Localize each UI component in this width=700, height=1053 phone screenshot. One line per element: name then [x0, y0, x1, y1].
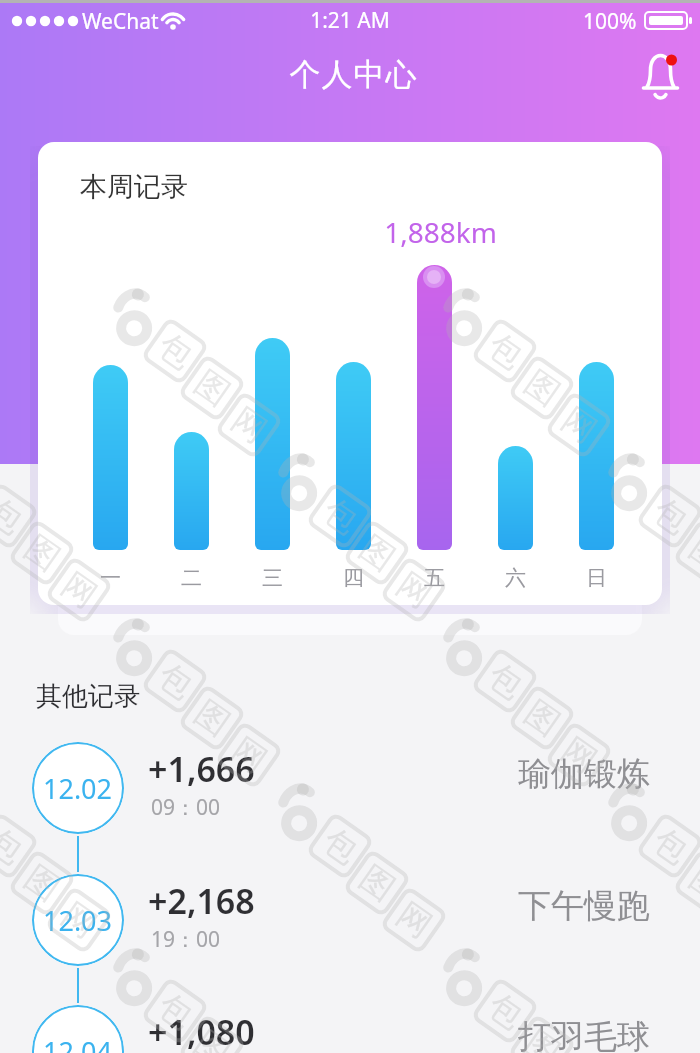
staticText: 包	[150, 985, 201, 1038]
staticText: 包	[315, 490, 366, 543]
staticText: 三	[262, 565, 283, 591]
staticText: 一	[100, 565, 121, 591]
staticText: 包	[0, 820, 31, 873]
staticText: 包	[645, 490, 696, 543]
staticText: 二	[181, 565, 202, 591]
staticText: 个人中心	[289, 55, 417, 94]
staticText: 图	[187, 1022, 238, 1053]
staticText: 网	[554, 729, 605, 782]
staticText: 包	[150, 325, 201, 378]
staticText: 网	[224, 399, 275, 452]
staticText: 网	[54, 564, 105, 617]
staticText: 12.03	[43, 902, 113, 939]
staticText: 网	[389, 894, 440, 947]
staticText: 其他记录	[36, 680, 140, 713]
staticText: 图	[517, 1022, 568, 1053]
staticText: 图	[517, 362, 568, 415]
staticText: +1,666	[148, 746, 255, 792]
button[interactable]: 瑜伽锻炼	[394, 746, 650, 802]
staticText: 网	[224, 729, 275, 782]
staticText: 五	[424, 565, 445, 591]
button[interactable]: 12.04	[32, 1005, 124, 1053]
staticText: 1:21 AM	[310, 6, 390, 35]
staticText: +2,168	[148, 878, 255, 924]
staticText: 图	[17, 527, 68, 580]
staticText: 网	[554, 399, 605, 452]
button[interactable]: 12.03	[32, 874, 124, 966]
staticText: 包	[645, 820, 696, 873]
staticText: 图	[682, 527, 700, 580]
staticText: +1,080	[148, 1009, 255, 1053]
staticText: 图	[187, 362, 238, 415]
button[interactable]	[636, 48, 688, 104]
staticText: 本周记录	[80, 170, 188, 204]
staticText: 包	[150, 655, 201, 708]
staticText: 12.04	[43, 1033, 113, 1053]
staticText: 瑜伽锻炼	[518, 753, 650, 795]
staticText: 图	[187, 692, 238, 745]
staticText: WeChat	[82, 7, 159, 36]
button[interactable]: 打羽毛球	[394, 1009, 650, 1053]
staticText: 图	[352, 527, 403, 580]
staticText: 包	[0, 490, 31, 543]
button[interactable]: 下午慢跑	[394, 878, 650, 934]
staticText: 四	[343, 565, 364, 591]
staticText: 六	[505, 565, 526, 591]
staticText: 19：00	[151, 925, 221, 954]
staticText: 网	[389, 564, 440, 617]
staticText: 图	[17, 857, 68, 910]
staticText: 100%	[583, 7, 637, 36]
staticText: 打羽毛球	[518, 1016, 650, 1053]
staticText: 09：00	[151, 793, 221, 822]
staticText: 日	[586, 565, 607, 591]
staticText: 图	[352, 857, 403, 910]
staticText: 网	[54, 894, 105, 947]
staticText: 图	[682, 857, 700, 910]
staticText: 包	[480, 325, 531, 378]
staticText: 包	[480, 655, 531, 708]
staticText: 下午慢跑	[518, 885, 650, 927]
button[interactable]: 12.02	[32, 742, 124, 834]
staticText: 1,888km	[384, 213, 497, 251]
staticText: 包	[315, 820, 366, 873]
staticText: 12.02	[43, 770, 113, 807]
staticText: 图	[517, 692, 568, 745]
staticText: 包	[480, 985, 531, 1038]
